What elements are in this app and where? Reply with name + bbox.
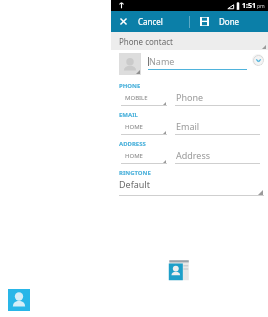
staticText: RINGTONE xyxy=(119,169,151,177)
button[interactable]: Contact icon xyxy=(8,289,30,311)
button[interactable]: Done xyxy=(190,11,268,32)
staticText: ADDRESS xyxy=(119,140,146,148)
staticText: PHONE xyxy=(119,82,141,90)
button[interactable]: Add photo xyxy=(119,53,141,75)
staticText: Cancel xyxy=(138,16,163,27)
staticText: Phone contact xyxy=(119,36,173,47)
button[interactable]: Address xyxy=(175,149,260,164)
button[interactable]: HOME xyxy=(121,120,167,135)
staticText: EMAIL xyxy=(119,111,138,119)
button[interactable]: Phone contact xyxy=(111,32,268,50)
button[interactable]: Default xyxy=(119,178,264,196)
button[interactable]: Contacts app xyxy=(165,257,192,284)
staticText: Name xyxy=(149,55,175,67)
button[interactable]: MOBILE xyxy=(121,91,167,106)
button[interactable]: HOME xyxy=(121,149,167,164)
staticText: Email xyxy=(176,120,200,132)
button[interactable]: Phone xyxy=(175,91,260,106)
staticText: 1:51 xyxy=(242,1,256,11)
button[interactable]: Email xyxy=(175,120,260,135)
staticText: HOME xyxy=(125,123,143,131)
button[interactable]: Expand name fields xyxy=(252,54,264,66)
button[interactable]: Name xyxy=(148,55,247,70)
staticText: Phone xyxy=(176,91,204,103)
button[interactable]: Cancel xyxy=(111,11,189,32)
staticText: pm xyxy=(257,3,265,10)
staticText: Default xyxy=(119,178,150,190)
staticText: MOBILE xyxy=(125,94,148,102)
staticText: Address xyxy=(176,149,211,161)
staticText: Done xyxy=(219,16,240,27)
staticText: HOME xyxy=(125,152,143,160)
